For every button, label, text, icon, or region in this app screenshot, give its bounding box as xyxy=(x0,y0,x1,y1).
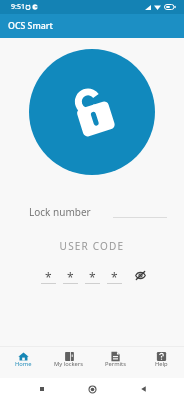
staticText: OCS Smart xyxy=(8,20,53,32)
button[interactable]: * xyxy=(85,269,100,284)
staticText: Home xyxy=(15,360,32,368)
staticText: My lockers xyxy=(54,360,84,368)
button[interactable]: * xyxy=(107,269,122,284)
staticText: Permits xyxy=(105,360,126,368)
button[interactable]: Recents xyxy=(33,380,51,398)
button[interactable]: Home xyxy=(0,347,46,378)
button[interactable]: Show code xyxy=(132,267,148,283)
staticText: 9:51 xyxy=(11,2,25,12)
button[interactable]: Back xyxy=(134,380,152,398)
staticText: * xyxy=(67,269,74,284)
staticText: Lock number xyxy=(29,205,91,219)
button[interactable]: My lockers xyxy=(46,347,92,378)
staticText: Help xyxy=(155,360,168,368)
staticText: USER CODE xyxy=(0,239,184,253)
staticText: * xyxy=(45,269,52,284)
button[interactable]: * xyxy=(63,269,78,284)
staticText: * xyxy=(89,269,96,284)
button[interactable]: Help xyxy=(138,347,184,378)
button[interactable]: Permits xyxy=(92,347,138,378)
button[interactable]: Unlock xyxy=(29,49,155,175)
staticText: * xyxy=(111,269,118,284)
button[interactable]: Home xyxy=(83,380,101,398)
button[interactable]: * xyxy=(41,269,56,284)
